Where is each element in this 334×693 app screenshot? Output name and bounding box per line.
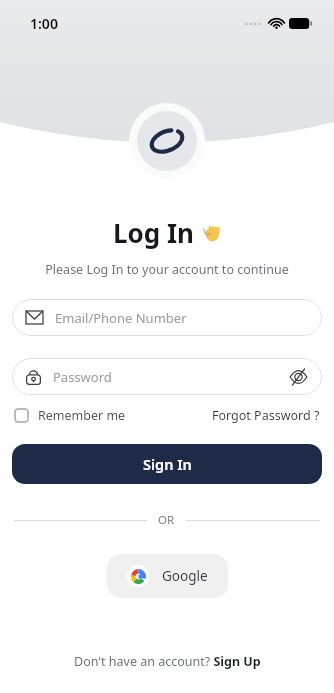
staticText: Sign In [143,454,192,474]
button[interactable]: Google [107,554,228,598]
button[interactable]: Password [12,358,322,395]
button[interactable]: Don't have an account? Sign Up [74,653,261,693]
staticText: Log In [113,215,194,250]
button[interactable]: Remember me [14,407,126,424]
staticText: Don't have an account? Sign Up [74,653,261,670]
button[interactable]: Forgot Password ? [212,407,320,424]
staticText: Password [53,368,112,386]
button[interactable]: Email/Phone Number [12,299,322,336]
staticText: OR [158,512,175,528]
staticText: Remember me [38,407,126,424]
button[interactable]: Show password [289,367,308,386]
staticText: Google [162,567,208,585]
staticText: Forgot Password ? [212,407,320,424]
staticText: Email/Phone Number [55,309,187,327]
staticText: Please Log In to your account to continu… [45,261,289,278]
button[interactable]: Sign In [12,444,322,484]
staticText: 1:00 [30,14,58,33]
